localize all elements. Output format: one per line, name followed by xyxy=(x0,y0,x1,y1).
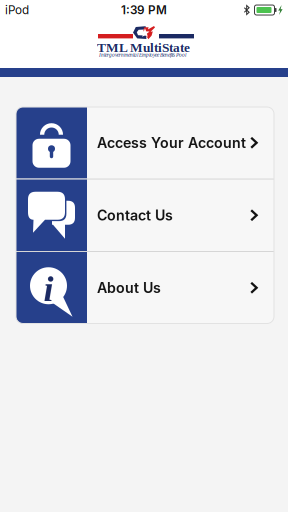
staticText: 1:39 PM xyxy=(121,3,167,17)
button[interactable]: Access Your Account xyxy=(16,107,274,178)
staticText: i xyxy=(43,269,53,309)
staticText: TML MultiState xyxy=(97,40,190,55)
staticText: Intergovernmental Employee Benefits Pool xyxy=(99,52,186,58)
button[interactable]: i xyxy=(16,252,274,323)
staticText: Contact Us xyxy=(97,207,173,224)
staticText: iPod xyxy=(5,3,29,17)
staticText: About Us xyxy=(97,279,161,296)
button[interactable]: Contact Us xyxy=(16,179,274,251)
staticText: Access Your Account xyxy=(97,134,246,151)
